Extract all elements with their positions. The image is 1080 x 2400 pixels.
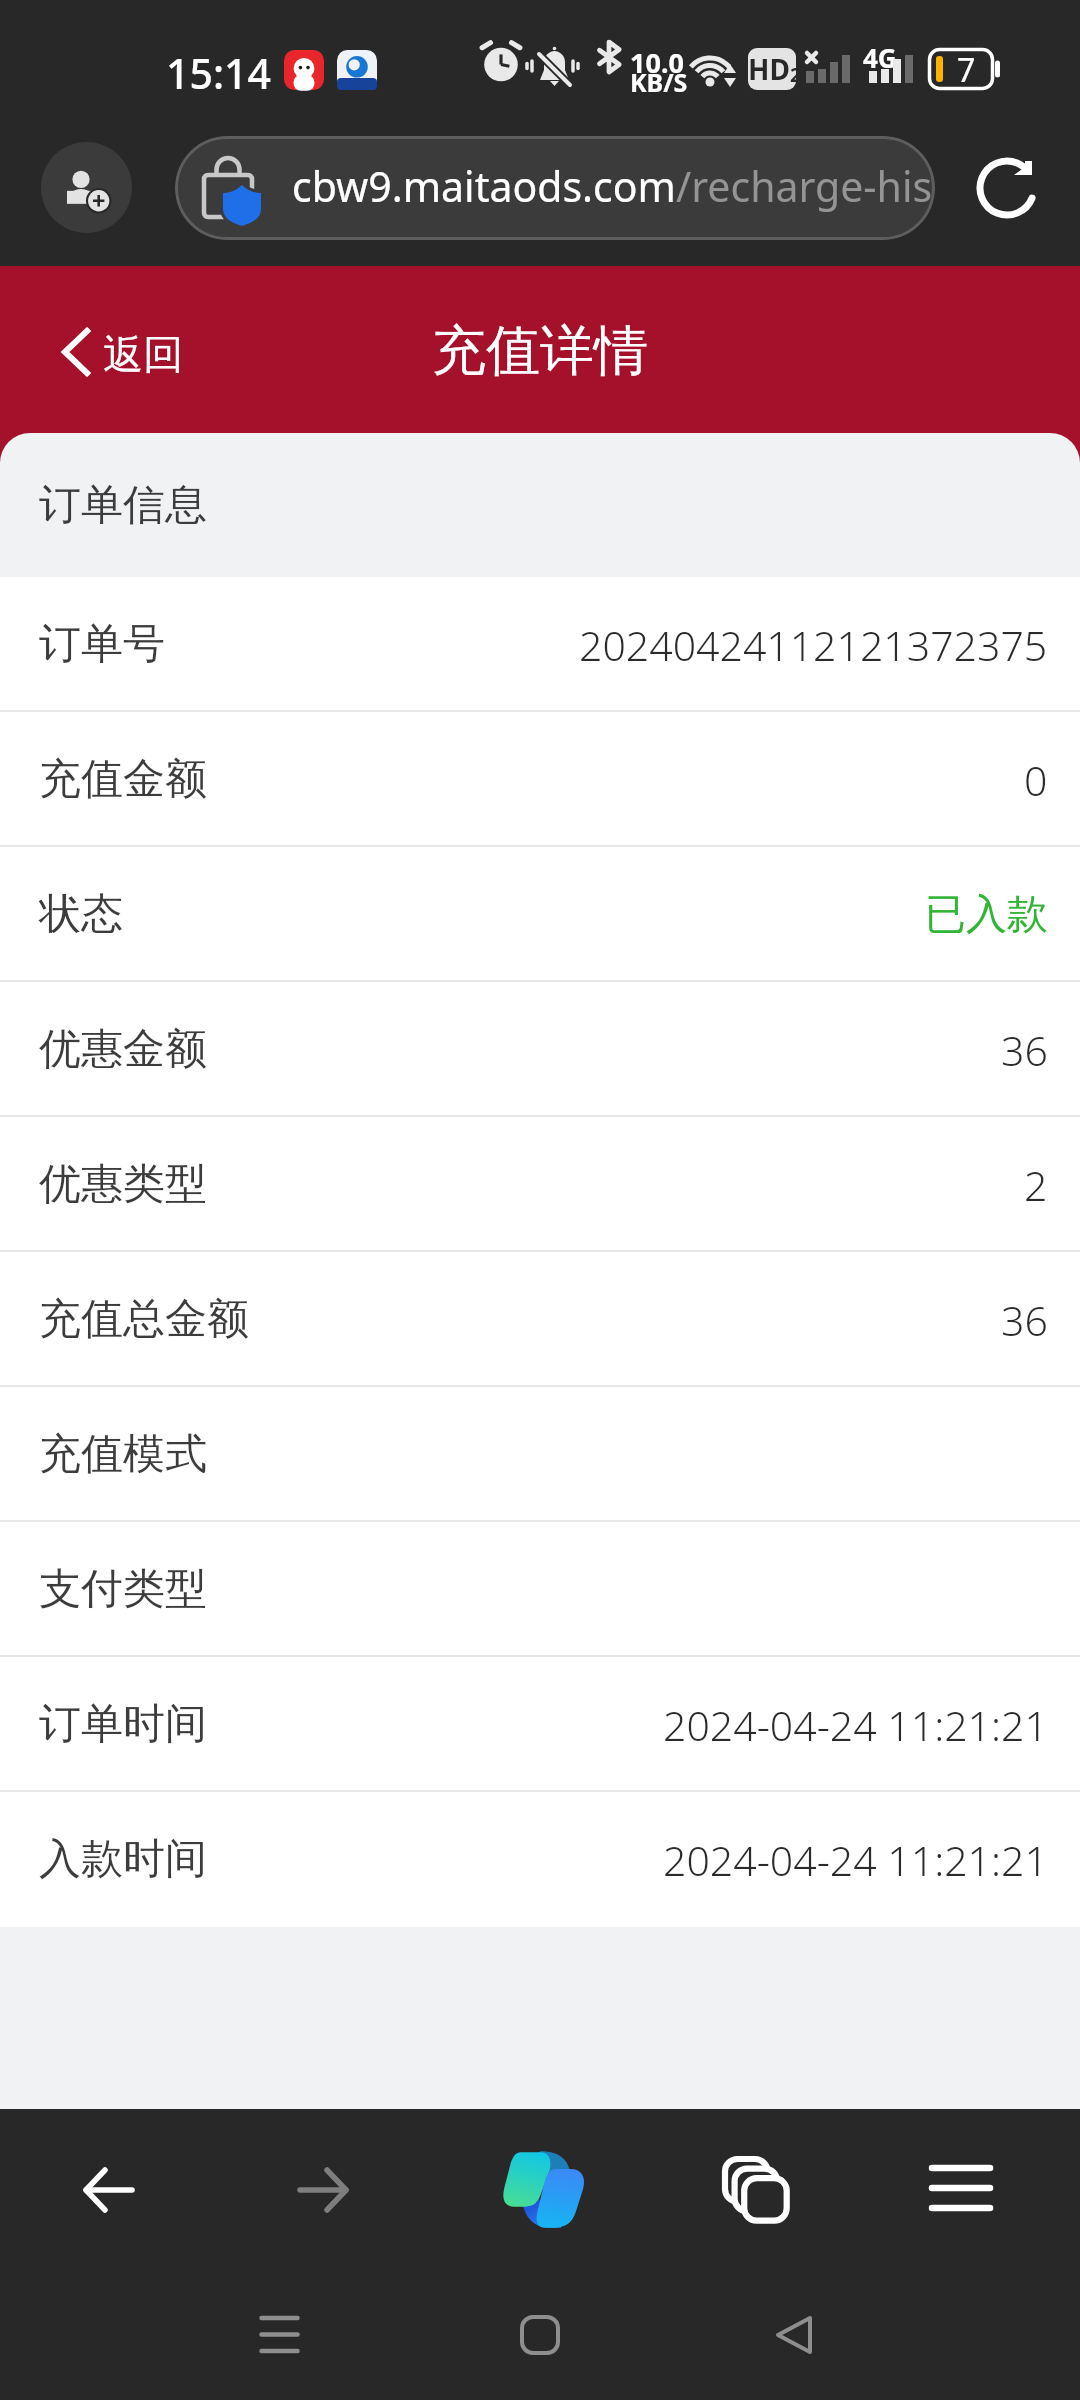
button[interactable]: 充值总金额 [0, 1252, 1080, 1387]
staticText: /recharge-his [676, 158, 933, 214]
button[interactable]: 支付类型 [0, 1522, 1080, 1657]
staticText: 订单信息 [39, 479, 207, 532]
staticText: 0 [1024, 752, 1048, 808]
staticText: 已入款 [925, 889, 1048, 941]
button[interactable]: 充值金额 [0, 712, 1080, 847]
button[interactable]: 订单时间 [0, 1657, 1080, 1792]
button[interactable]: Tabs [691, 2125, 821, 2255]
button[interactable]: 订单号 [0, 577, 1080, 712]
button[interactable]: Copilot [475, 2125, 605, 2255]
staticText: 返回 [103, 329, 183, 379]
button[interactable]: Recent apps [229, 2289, 329, 2400]
button[interactable]: Forward [258, 2125, 388, 2255]
button[interactable]: Profile [41, 142, 132, 233]
button[interactable]: Back [745, 2289, 845, 2400]
button[interactable]: Refresh [962, 143, 1052, 233]
button[interactable]: 优惠类型 [0, 1117, 1080, 1252]
button[interactable]: Home [490, 2289, 590, 2400]
button[interactable]: Back [44, 2125, 174, 2255]
button[interactable]: 优惠金额 [0, 982, 1080, 1117]
staticText: 优惠金额 [39, 1023, 207, 1076]
staticText: KB/S [630, 65, 688, 99]
button[interactable]: 状态 [0, 847, 1080, 982]
button[interactable]: Menu [896, 2125, 1026, 2255]
staticText: 2024-04-24 11:21:21 [663, 1832, 1048, 1888]
staticText: 订单时间 [39, 1698, 207, 1751]
staticText: 充值详情 [432, 317, 648, 385]
staticText: 订单号 [39, 618, 165, 671]
staticText: 2 [790, 62, 796, 88]
staticText: 入款时间 [39, 1833, 207, 1886]
staticText: 4G [863, 40, 897, 75]
staticText: 15:14 [166, 45, 271, 101]
staticText: HD [748, 50, 790, 88]
button[interactable]: 入款时间 [0, 1792, 1080, 1927]
staticText: 优惠类型 [39, 1158, 207, 1211]
staticText: 10.0 [630, 44, 684, 81]
button[interactable]: cbw9.maitaods.com [175, 136, 935, 240]
staticText: 36 [1001, 1292, 1048, 1348]
staticText: 充值总金额 [39, 1293, 249, 1346]
staticText: 充值模式 [39, 1428, 207, 1481]
staticText: cbw9.maitaods.com [292, 158, 676, 214]
staticText: 20240424112121372375 [579, 617, 1048, 673]
button[interactable]: 充值模式 [0, 1387, 1080, 1522]
staticText: 36 [1001, 1022, 1048, 1078]
staticText: 2024-04-24 11:21:21 [663, 1697, 1048, 1753]
button[interactable]: 返回 [50, 266, 240, 433]
staticText: 充值金额 [39, 753, 207, 806]
staticText: 支付类型 [39, 1563, 207, 1616]
staticText: 状态 [39, 888, 123, 941]
staticText: 7 [957, 48, 976, 90]
staticText: 2 [1024, 1157, 1048, 1213]
